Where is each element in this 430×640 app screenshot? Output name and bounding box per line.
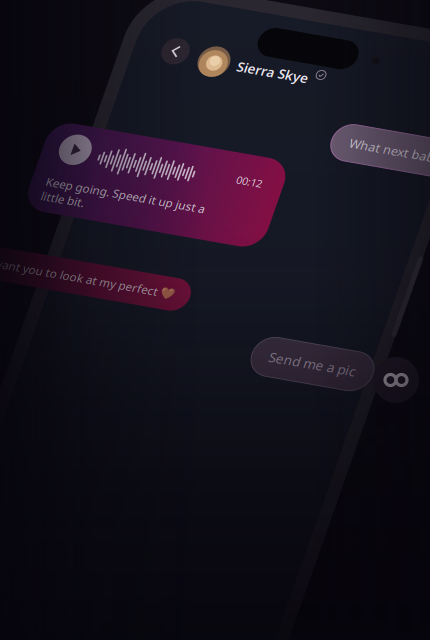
button[interactable]: More xyxy=(373,357,419,403)
staticText: Keep going. Speed it up just a xyxy=(99,269,323,290)
staticText: Sierra Skye xyxy=(299,61,399,86)
button[interactable]: Back xyxy=(191,49,229,87)
staticText: little bit. xyxy=(99,290,160,311)
